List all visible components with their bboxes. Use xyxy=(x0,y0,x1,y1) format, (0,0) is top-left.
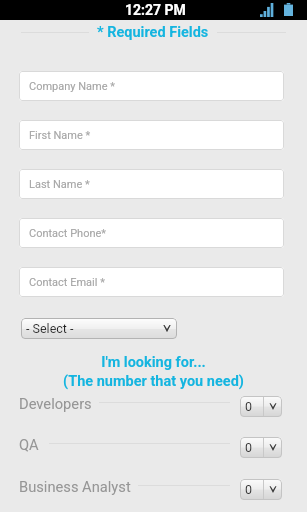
button[interactable]: Contact Email * xyxy=(19,267,284,297)
staticText: Business Analyst xyxy=(19,478,131,495)
staticText: Company Name * xyxy=(29,80,116,93)
button[interactable]: Select number of Business Analyst xyxy=(240,479,282,500)
staticText: 0 xyxy=(245,440,253,455)
staticText: QA xyxy=(19,436,39,453)
button[interactable]: Company Name * xyxy=(19,71,284,101)
staticText: 12:27 PM xyxy=(125,2,186,18)
button[interactable]: Last Name * xyxy=(19,169,284,199)
button[interactable]: - Select - xyxy=(21,318,177,339)
staticText: Developers xyxy=(19,395,92,412)
staticText: * Required Fields xyxy=(97,24,209,41)
staticText: Contact Phone* xyxy=(29,227,107,240)
button[interactable]: Select number of Developers xyxy=(240,396,282,417)
button[interactable]: Contact Phone* xyxy=(19,218,284,248)
staticText: First Name * xyxy=(29,129,91,142)
staticText: I'm looking for... xyxy=(101,354,206,371)
staticText: 0 xyxy=(245,482,253,497)
staticText: - Select - xyxy=(26,321,157,336)
button[interactable]: Select number of QA xyxy=(240,437,282,458)
staticText: Last Name * xyxy=(29,178,90,191)
staticText: Contact Email * xyxy=(29,276,105,289)
staticText: (The number that you need) xyxy=(63,373,244,390)
staticText: 0 xyxy=(245,399,253,414)
button[interactable]: First Name * xyxy=(19,120,284,150)
